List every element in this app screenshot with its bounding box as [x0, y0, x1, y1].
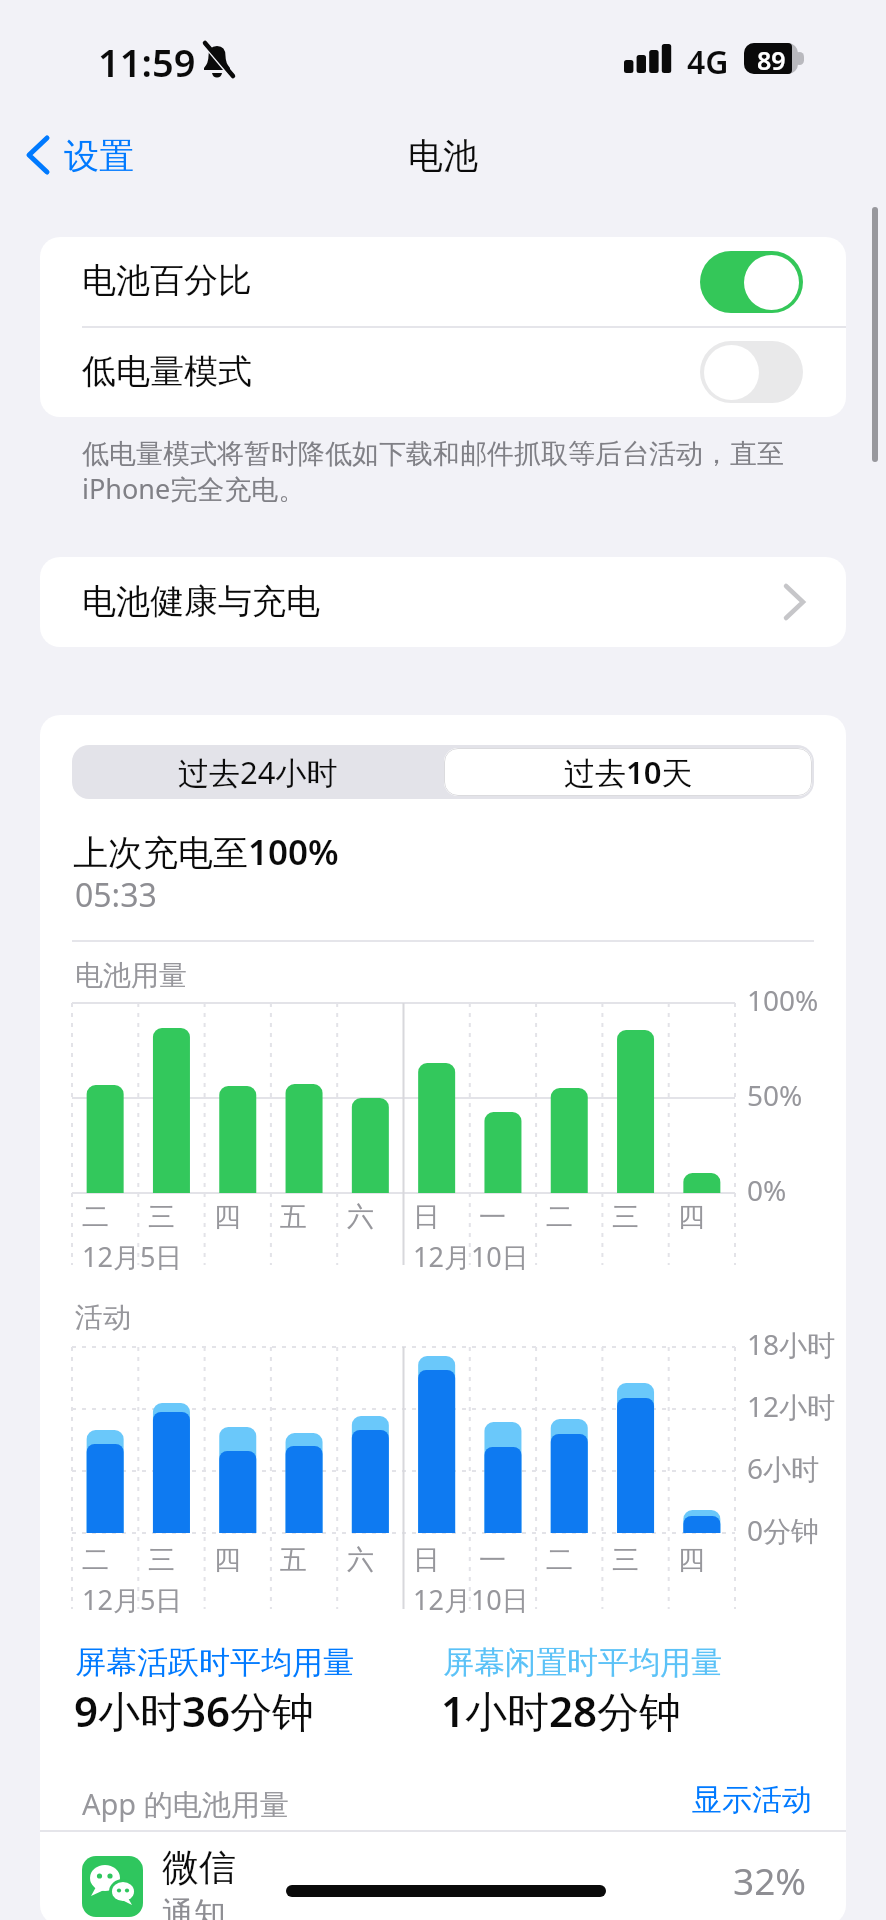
- staticText: 电池用量: [75, 958, 187, 993]
- staticText: 六: [347, 1200, 374, 1234]
- staticText: 1小时28分钟: [441, 1682, 682, 1739]
- staticText: 五: [280, 1200, 307, 1234]
- staticText: 三: [148, 1200, 175, 1234]
- staticText: 18小时: [747, 1325, 836, 1363]
- staticText: 过去10天: [564, 751, 693, 793]
- button[interactable]: [40, 327, 846, 417]
- staticText: 05:33: [75, 873, 157, 917]
- staticText: 二: [546, 1543, 573, 1577]
- staticText: 0%: [747, 1171, 787, 1209]
- staticText: 三: [612, 1543, 639, 1577]
- staticText: 设置: [64, 134, 134, 178]
- staticText: 4G: [687, 40, 729, 84]
- staticText: 五: [280, 1543, 307, 1577]
- staticText: 6小时: [747, 1449, 820, 1487]
- staticText: 日: [413, 1200, 440, 1234]
- staticText: 日: [413, 1543, 440, 1577]
- staticText: 11:59: [98, 36, 196, 88]
- staticText: 12月5日: [82, 1581, 183, 1618]
- staticText: iPhone完全充电。: [82, 470, 306, 507]
- button[interactable]: 设置: [16, 128, 176, 184]
- staticText: 50%: [747, 1076, 803, 1114]
- staticText: 电池健康与充电: [82, 580, 320, 623]
- staticText: 二: [546, 1200, 573, 1234]
- staticText: 上次充电至100%: [73, 828, 339, 876]
- staticText: 三: [148, 1543, 175, 1577]
- button[interactable]: 过去24小时: [72, 745, 443, 799]
- staticText: 32%: [733, 1855, 807, 1905]
- staticText: 一: [479, 1200, 506, 1234]
- staticText: 过去24小时: [178, 751, 338, 793]
- button[interactable]: 显示活动: [660, 1778, 820, 1822]
- staticText: 0分钟: [747, 1511, 820, 1549]
- staticText: 一: [479, 1543, 506, 1577]
- staticText: 活动: [75, 1300, 131, 1335]
- staticText: 12月5日: [82, 1238, 183, 1275]
- staticText: 低电量模式将暂时降低如下载和邮件抓取等后台活动，直至: [82, 437, 784, 471]
- staticText: 四: [214, 1200, 241, 1234]
- staticText: 89: [757, 43, 786, 74]
- staticText: 低电量模式: [82, 350, 252, 393]
- staticText: 12月10日: [413, 1581, 529, 1618]
- button[interactable]: [40, 1832, 846, 1920]
- staticText: 12小时: [747, 1387, 836, 1425]
- staticText: 9小时36分钟: [74, 1682, 315, 1739]
- staticText: 四: [214, 1543, 241, 1577]
- button[interactable]: [700, 341, 803, 403]
- staticText: 屏幕活跃时平均用量: [75, 1643, 354, 1682]
- staticText: 三: [612, 1200, 639, 1234]
- staticText: 屏幕闲置时平均用量: [443, 1643, 722, 1682]
- staticText: 100%: [747, 981, 819, 1019]
- button[interactable]: [40, 237, 846, 327]
- button[interactable]: 过去10天: [443, 745, 814, 799]
- staticText: 二: [82, 1200, 109, 1234]
- staticText: 四: [678, 1200, 705, 1234]
- staticText: 微信: [162, 1844, 236, 1891]
- staticText: 电池百分比: [82, 259, 252, 302]
- staticText: 显示活动: [692, 1781, 812, 1819]
- button[interactable]: [40, 557, 846, 647]
- staticText: App 的电池用量: [82, 1784, 289, 1824]
- staticText: 通知: [162, 1894, 226, 1920]
- staticText: 六: [347, 1543, 374, 1577]
- button[interactable]: [700, 251, 803, 313]
- staticText: 电池: [408, 134, 478, 178]
- staticText: 四: [678, 1543, 705, 1577]
- staticText: 12月10日: [413, 1238, 529, 1275]
- staticText: 二: [82, 1543, 109, 1577]
